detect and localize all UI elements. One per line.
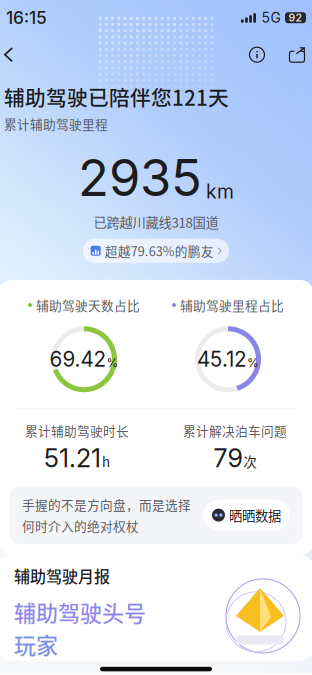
staticText: 累计解决泊车问题 (183, 421, 287, 440)
staticText: 51.21 (44, 443, 101, 473)
staticText: 玩家 (14, 628, 58, 660)
staticText: km (206, 180, 234, 203)
staticText: 2935 (78, 147, 202, 208)
button[interactable]: 超越79.63%的鹏友 (83, 239, 229, 263)
staticText: % (247, 356, 259, 370)
button[interactable]: Back (4, 44, 30, 66)
staticText: 45.12 (197, 347, 247, 372)
staticText: 79 (213, 443, 242, 473)
staticText: 累计辅助驾驶时长 (25, 421, 129, 440)
staticText: 累计辅助驾驶里程 (4, 115, 108, 133)
staticText: 辅助驾驶天数占比 (36, 296, 140, 314)
button[interactable]: 晒晒数据 (203, 499, 290, 531)
staticText: 超越79.63%的鹏友 (105, 242, 214, 260)
staticText: 晒晒数据 (229, 505, 281, 525)
button[interactable]: Share (286, 44, 308, 66)
staticText: 辅助驾驶已陪伴您121天 (4, 82, 229, 112)
button[interactable]: 辅助驾驶月报 (0, 555, 312, 661)
staticText: 次 (243, 451, 256, 471)
staticText: 16:15 (6, 7, 47, 28)
staticText: % (106, 356, 118, 370)
button[interactable]: Info (246, 44, 268, 66)
staticText: 何时介入的绝对权杖 (22, 517, 139, 535)
staticText: 手握的不是方向盘，而是选择 (22, 495, 191, 513)
staticText: 辅助驾驶头号 (14, 596, 146, 628)
staticText: 69.42 (49, 347, 106, 372)
staticText: 92 (288, 11, 302, 24)
staticText: 辅助驾驶里程占比 (180, 296, 284, 314)
staticText: 已跨越川藏线318国道 (93, 212, 218, 232)
staticText: h (102, 451, 110, 471)
staticText: 5G (261, 9, 280, 26)
staticText: 辅助驾驶月报 (14, 564, 110, 587)
